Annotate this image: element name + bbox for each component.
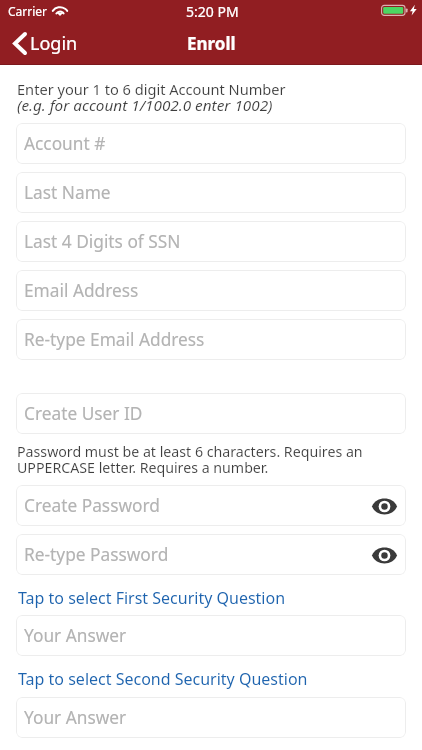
staticText: 5:20 PM [186, 2, 239, 21]
button[interactable]: Last 4 Digits of SSN [16, 221, 406, 262]
button[interactable]: Re-type Email Address [16, 319, 406, 360]
staticText: Re-type Password [24, 543, 169, 567]
staticText: Account # [24, 132, 106, 156]
staticText: Carrier [8, 3, 48, 19]
button[interactable]: Email Address [16, 270, 406, 311]
staticText: Your Answer [24, 706, 127, 730]
button[interactable]: Show password [369, 540, 399, 570]
staticText: Last 4 Digits of SSN [24, 230, 181, 254]
button[interactable]: Show password [369, 491, 399, 521]
button[interactable]: Tap to select Second Security Question [16, 668, 308, 690]
staticText: Re-type Email Address [24, 328, 205, 352]
staticText: Password must be at least 6 characters. … [17, 444, 406, 476]
staticText: Your Answer [24, 624, 127, 648]
button[interactable]: Create User ID [16, 393, 406, 434]
staticText: Create Password [24, 494, 160, 518]
button[interactable]: Create Password [16, 485, 406, 526]
staticText: Email Address [24, 279, 139, 303]
button[interactable]: Last Name [16, 172, 406, 213]
staticText: Enroll [187, 32, 236, 55]
staticText: Login [30, 31, 78, 56]
button[interactable]: Re-type Password [16, 534, 406, 575]
button[interactable]: Your Answer [16, 697, 406, 738]
button[interactable]: Account # [16, 123, 406, 164]
button[interactable]: Login [0, 26, 148, 61]
staticText: (e.g. for account 1/1002.0 enter 1002) [17, 98, 273, 114]
button[interactable]: Tap to select First Security Question [16, 587, 286, 609]
staticText: Create User ID [24, 402, 143, 426]
staticText: Last Name [24, 181, 111, 205]
staticText: Enter your 1 to 6 digit Account Number [17, 82, 286, 98]
button[interactable]: Your Answer [16, 615, 406, 656]
